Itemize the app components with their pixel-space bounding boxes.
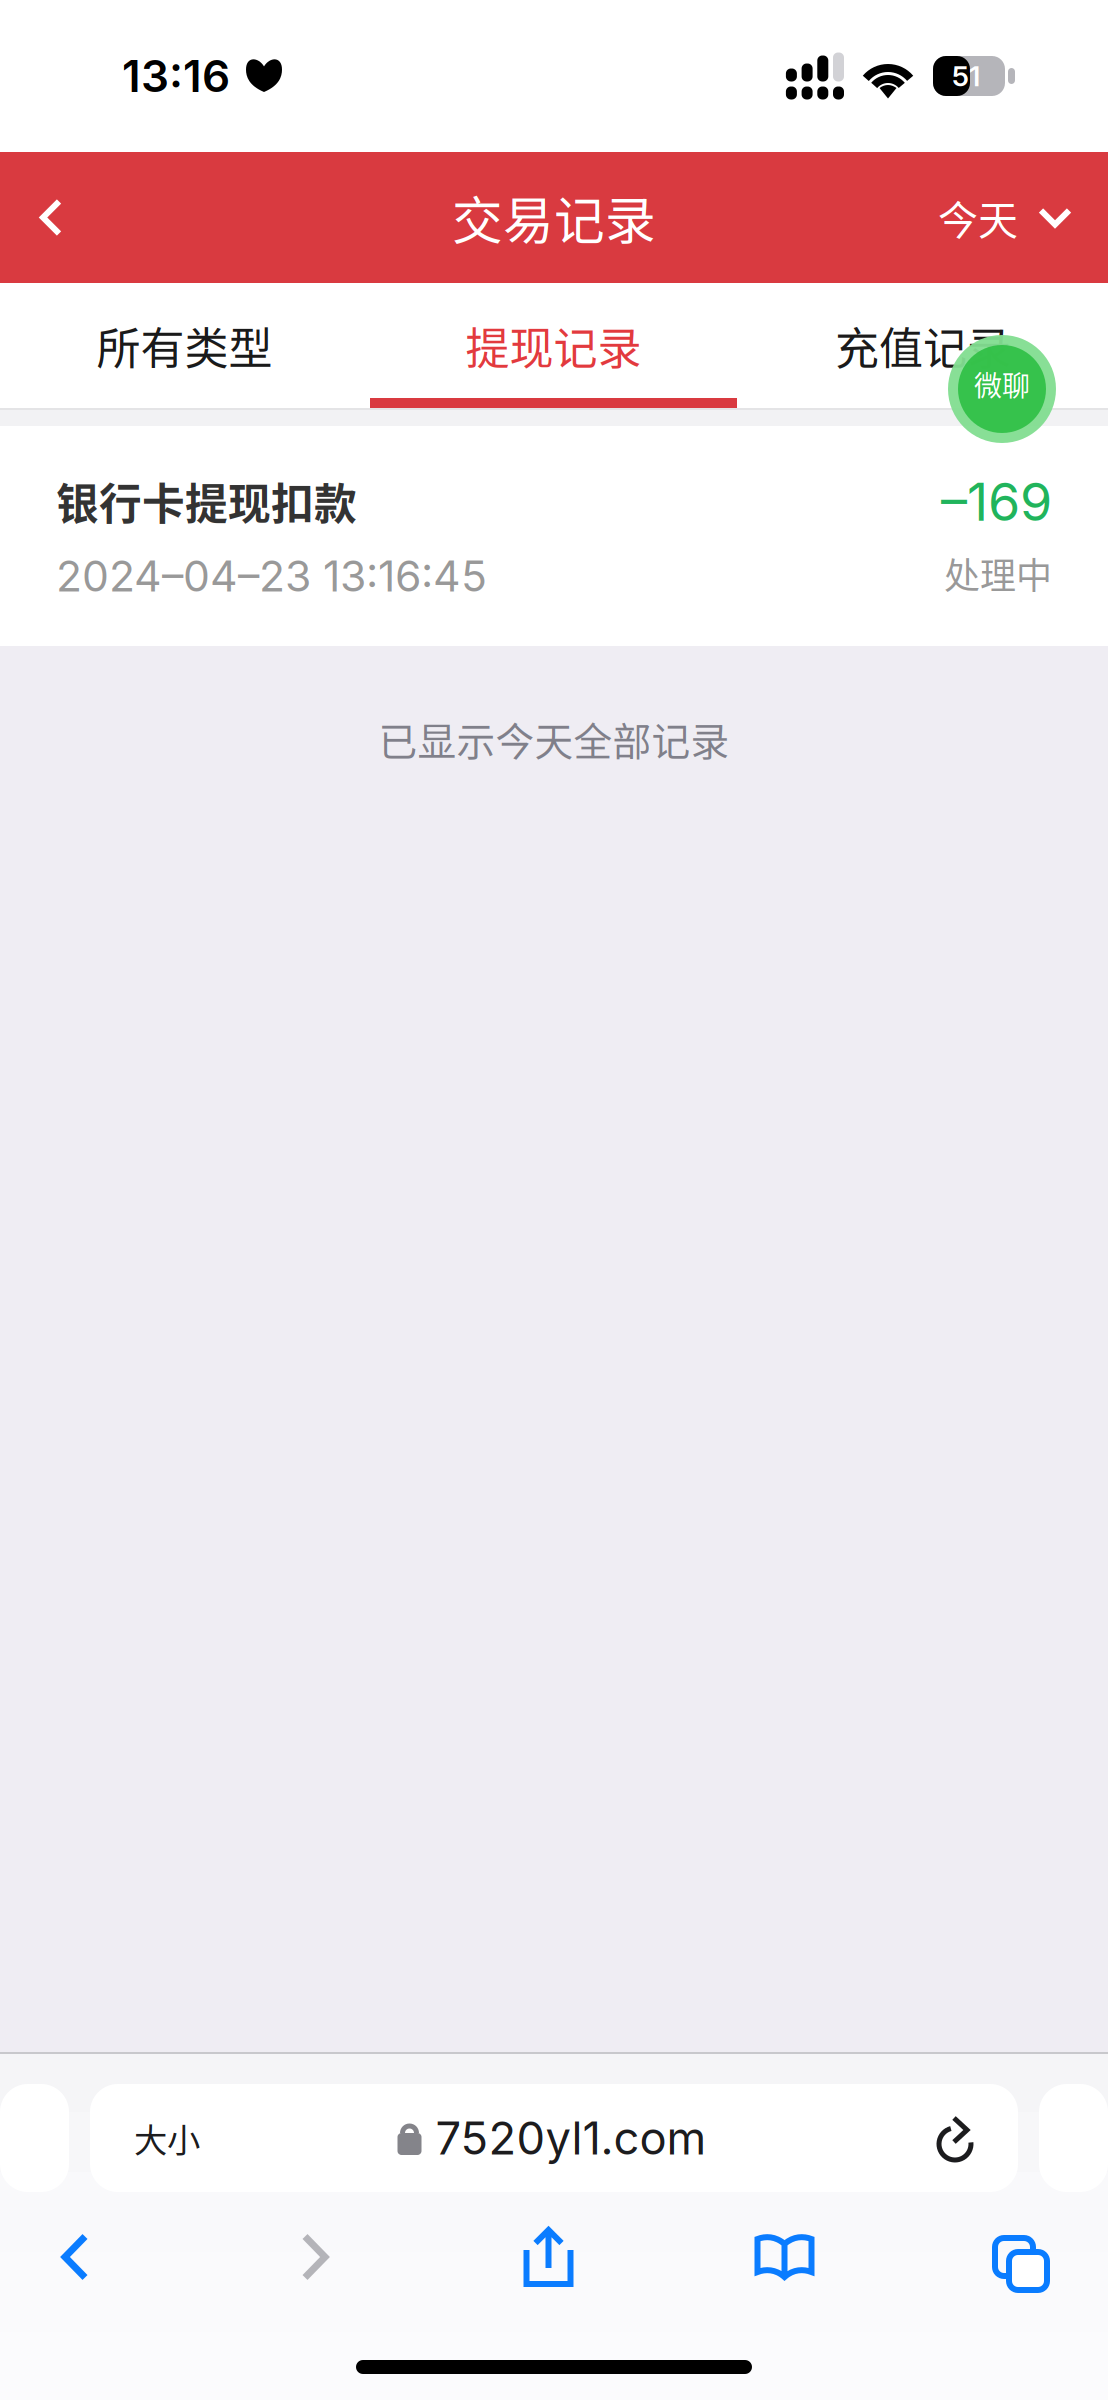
button[interactable]: 大小: [90, 2084, 200, 2192]
staticText: 已显示今天全部记录: [378, 711, 729, 767]
staticText: 充值记录: [835, 314, 1011, 377]
button[interactable]: 微聊: [948, 335, 1056, 443]
button[interactable]: 所有类型: [0, 283, 369, 408]
button[interactable]: 提现记录: [369, 283, 738, 408]
button[interactable]: Back: [0, 2204, 150, 2310]
staticText: –169: [941, 470, 1052, 533]
staticText: 2024–04–23 13:16:45: [56, 550, 487, 602]
button[interactable]: 银行卡提现扣款: [0, 426, 1108, 646]
staticText: 处理中: [944, 547, 1052, 599]
button[interactable]: Tabs: [920, 2204, 1108, 2310]
staticText: 交易记录: [452, 181, 656, 254]
staticText: 51: [952, 59, 980, 93]
staticText: 所有类型: [96, 314, 272, 377]
staticText: 7520yl1.com: [435, 2111, 706, 2165]
staticText: 13:16: [122, 49, 230, 103]
button[interactable]: Reload: [936, 2084, 1018, 2192]
button[interactable]: 今天: [938, 152, 1108, 283]
button[interactable]: Forward: [150, 2204, 480, 2310]
staticText: 今天: [938, 188, 1018, 246]
button[interactable]: Bookmarks: [617, 2204, 920, 2310]
button[interactable]: Share: [480, 2204, 617, 2310]
button[interactable]: Back: [0, 152, 96, 283]
staticText: 微聊: [974, 364, 1030, 404]
button[interactable]: 充值记录: [738, 283, 1108, 408]
staticText: 大小: [134, 2114, 200, 2162]
staticText: 银行卡提现扣款: [56, 470, 357, 532]
staticText: 提现记录: [465, 314, 641, 377]
